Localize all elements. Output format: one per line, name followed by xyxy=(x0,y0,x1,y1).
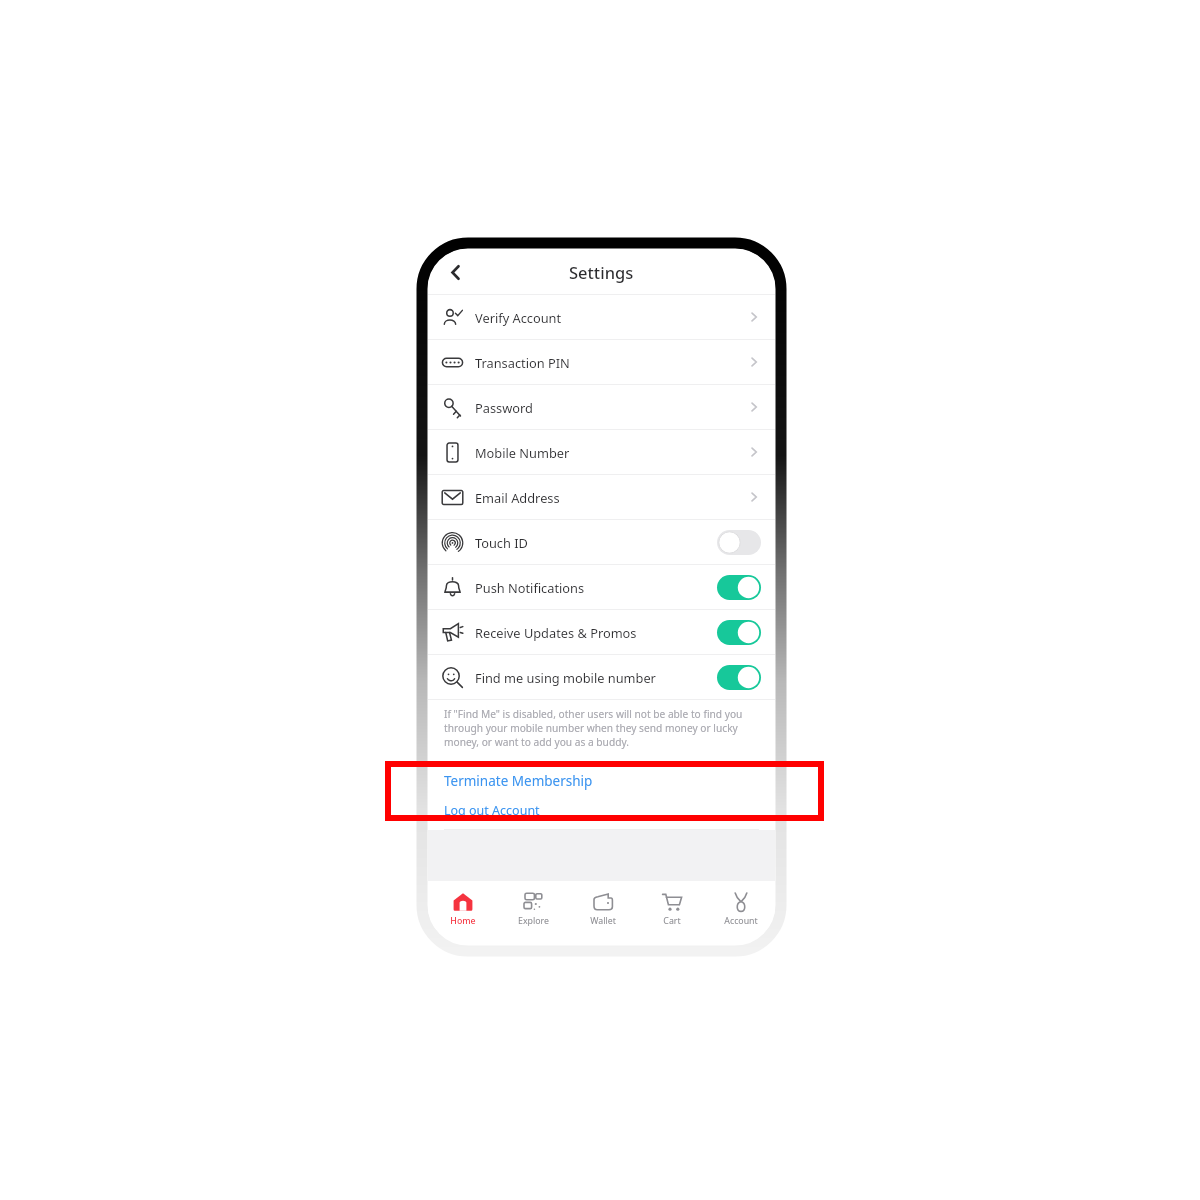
button[interactable]: Push Notifications xyxy=(428,565,775,609)
button[interactable]: Home xyxy=(428,881,498,937)
staticText: Find me using mobile number xyxy=(475,669,717,686)
button[interactable]: Find me using mobile number xyxy=(428,655,775,699)
button[interactable]: Explore xyxy=(498,881,568,937)
button[interactable]: Password xyxy=(428,385,775,429)
staticText: Terminate Membership xyxy=(444,772,593,790)
button[interactable]: Receive Updates & Promos xyxy=(428,610,775,654)
button[interactable]: Enabled xyxy=(717,575,761,600)
button[interactable]: Terminate Membership xyxy=(428,765,775,797)
button[interactable]: Transaction PIN xyxy=(428,340,775,384)
staticText: Push Notifications xyxy=(475,579,717,596)
staticText: Touch ID xyxy=(475,534,717,551)
staticText: Settings xyxy=(569,261,634,283)
button[interactable]: Disabled xyxy=(717,530,761,555)
staticText: Email Address xyxy=(475,489,747,506)
button[interactable]: Touch ID xyxy=(428,520,775,564)
staticText: Verify Account xyxy=(475,309,747,326)
button[interactable]: Enabled xyxy=(717,620,761,645)
button[interactable]: Wallet xyxy=(568,881,637,937)
staticText: Log out Account xyxy=(444,802,540,819)
button[interactable]: Enabled xyxy=(717,665,761,690)
button[interactable]: Verify Account xyxy=(428,295,775,339)
button[interactable]: Back xyxy=(438,255,472,289)
staticText: Mobile Number xyxy=(475,444,747,461)
button[interactable]: Account xyxy=(706,881,775,937)
button[interactable]: Email Address xyxy=(428,475,775,519)
staticText: Password xyxy=(475,399,747,416)
staticText: Explore xyxy=(518,915,549,927)
staticText: Wallet xyxy=(590,915,616,927)
staticText: If "Find Me" is disabled, other users wi… xyxy=(444,707,759,749)
button[interactable]: Mobile Number xyxy=(428,430,775,474)
button[interactable]: Cart xyxy=(637,881,706,937)
staticText: Transaction PIN xyxy=(475,354,747,371)
staticText: Account xyxy=(724,915,758,927)
staticText: Home xyxy=(450,915,476,927)
staticText: Cart xyxy=(663,915,681,927)
button[interactable]: Log out Account xyxy=(428,797,775,823)
staticText: Receive Updates & Promos xyxy=(475,624,717,641)
